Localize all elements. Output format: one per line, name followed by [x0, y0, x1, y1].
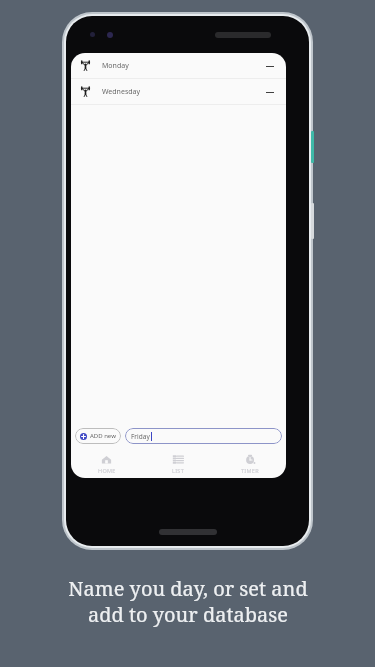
staticText: ADD new	[90, 432, 116, 440]
staticText: TIMER	[241, 467, 259, 474]
button[interactable]: Friday	[125, 428, 282, 444]
staticText: Wednesday	[102, 87, 141, 97]
button[interactable]: Remove Wednesday	[263, 85, 277, 99]
button[interactable]: LIST	[142, 450, 214, 478]
button[interactable]: HOME	[71, 450, 142, 478]
button[interactable]: Wednesday	[71, 79, 286, 104]
staticText: LIST	[172, 467, 185, 474]
button[interactable]: Monday	[71, 53, 286, 78]
staticText: Friday	[131, 432, 150, 441]
staticText: Name you day, or set and add to your dat…	[68, 575, 308, 628]
button[interactable]: TIMER	[214, 450, 286, 478]
button[interactable]: Remove Monday	[263, 59, 277, 73]
button[interactable]: ADD new	[75, 428, 121, 444]
staticText: Monday	[102, 61, 129, 71]
staticText: HOME	[98, 467, 116, 474]
